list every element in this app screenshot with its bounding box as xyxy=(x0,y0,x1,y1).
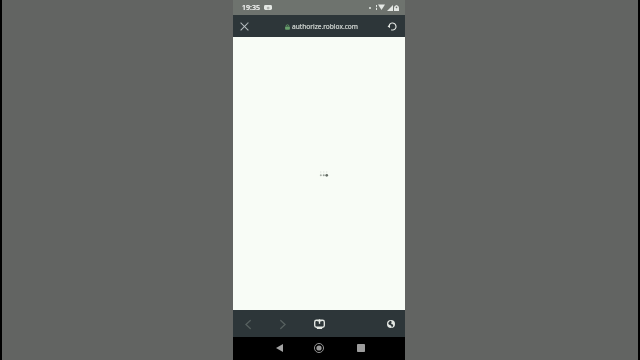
button[interactable]: authorize.roblox.com xyxy=(285,22,358,31)
staticText: authorize.roblox.com xyxy=(292,22,358,31)
button[interactable]: Forward xyxy=(272,313,294,335)
button[interactable]: Back xyxy=(237,313,259,335)
staticText: 19:35 xyxy=(242,3,260,13)
button[interactable]: Close xyxy=(236,18,252,34)
button[interactable]: Back xyxy=(268,337,290,359)
button[interactable]: Open in browser xyxy=(380,313,402,335)
button[interactable]: Recents xyxy=(350,337,372,359)
button[interactable]: Request desktop site xyxy=(308,313,330,335)
button[interactable]: Refresh xyxy=(384,18,400,34)
button[interactable]: Home xyxy=(308,337,330,359)
